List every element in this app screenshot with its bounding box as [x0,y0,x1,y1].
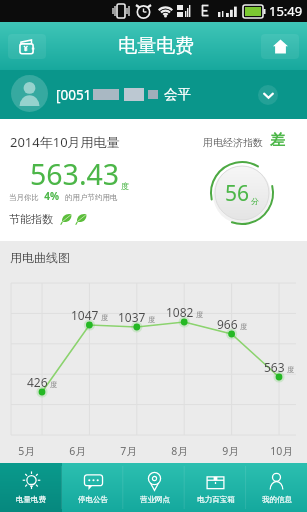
staticText: 度 [101,313,108,322]
button[interactable]: 电力百宝箱 [185,463,246,512]
staticText: 6月 [69,444,86,458]
button[interactable]: 电量电费 [0,463,62,512]
staticText: 的用户节约用电 [65,193,118,202]
staticText: 8月 [171,444,188,458]
staticText: 9月 [222,444,239,458]
staticText: 2014年10月用电量 [10,133,120,151]
staticText: 4% [39,189,65,203]
staticText: 度 [196,310,203,319]
staticText: 我的信息 [262,495,292,504]
staticText: 当月你比 [9,193,39,202]
staticText: 节能指数 [9,212,53,226]
staticText: 电量电费 [118,34,194,58]
staticText: 营业网点 [140,495,170,504]
button[interactable]: Wallet [8,34,46,59]
staticText: 度 [50,380,57,389]
button[interactable]: Home [261,34,299,59]
staticText: 电力百宝箱 [197,495,235,504]
staticText: 7月 [120,444,137,458]
staticText: 1037 [118,309,146,325]
staticText: 563 [264,359,285,375]
staticText: 度 [121,181,129,191]
staticText: 度 [287,365,294,374]
button[interactable]: [0051 [0,70,307,119]
staticText: 966 [217,316,238,332]
staticText: 分 [251,196,259,206]
button[interactable]: Expand account [258,85,278,105]
staticText: 1082 [166,304,194,320]
staticText: 用电经济指数 [203,136,263,149]
staticText: 1047 [71,307,99,323]
staticText: 度 [148,315,155,324]
staticText: 10月 [270,444,293,458]
staticText: 会平 [164,86,191,103]
button[interactable]: 停电公告 [62,463,124,512]
staticText: 电量电费 [16,495,46,504]
staticText: 差 [270,131,285,150]
staticText: 563.43 [30,155,120,194]
button[interactable]: 我的信息 [246,463,307,512]
staticText: 15:49 [269,2,303,20]
staticText: 度 [240,322,247,331]
staticText: 426 [27,374,48,390]
staticText: 用电曲线图 [10,250,70,265]
staticText: [0051 [56,86,92,104]
staticText: 停电公告 [78,495,108,504]
staticText: 5月 [18,444,35,458]
button[interactable]: 营业网点 [124,463,185,512]
staticText: 56 [225,179,250,208]
